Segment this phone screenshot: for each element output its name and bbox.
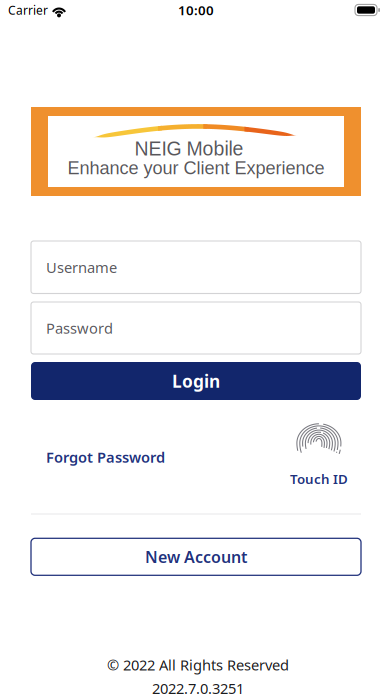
staticText: Login: [172, 369, 220, 392]
staticText: 10:00: [178, 1, 214, 19]
button[interactable]: Login: [31, 362, 361, 400]
staticText: New Account: [145, 546, 247, 567]
staticText: Password: [46, 318, 113, 338]
button[interactable]: Forgot Password: [46, 444, 176, 470]
button[interactable]: Username: [31, 241, 361, 293]
staticText: Enhance your Client Experience: [67, 158, 324, 178]
staticText: Touch ID: [290, 470, 348, 488]
staticText: Carrier: [8, 2, 48, 18]
staticText: Username: [46, 257, 117, 277]
staticText: Forgot Password: [46, 447, 165, 467]
staticText: 2022.7.0.3251: [152, 678, 244, 696]
staticText: NEIG Mobile: [134, 138, 243, 160]
button[interactable]: New Account: [31, 538, 361, 575]
button[interactable]: Password: [31, 302, 361, 354]
staticText: © 2022 All Rights Reserved: [107, 655, 289, 674]
button[interactable]: Touch ID: [289, 422, 349, 488]
